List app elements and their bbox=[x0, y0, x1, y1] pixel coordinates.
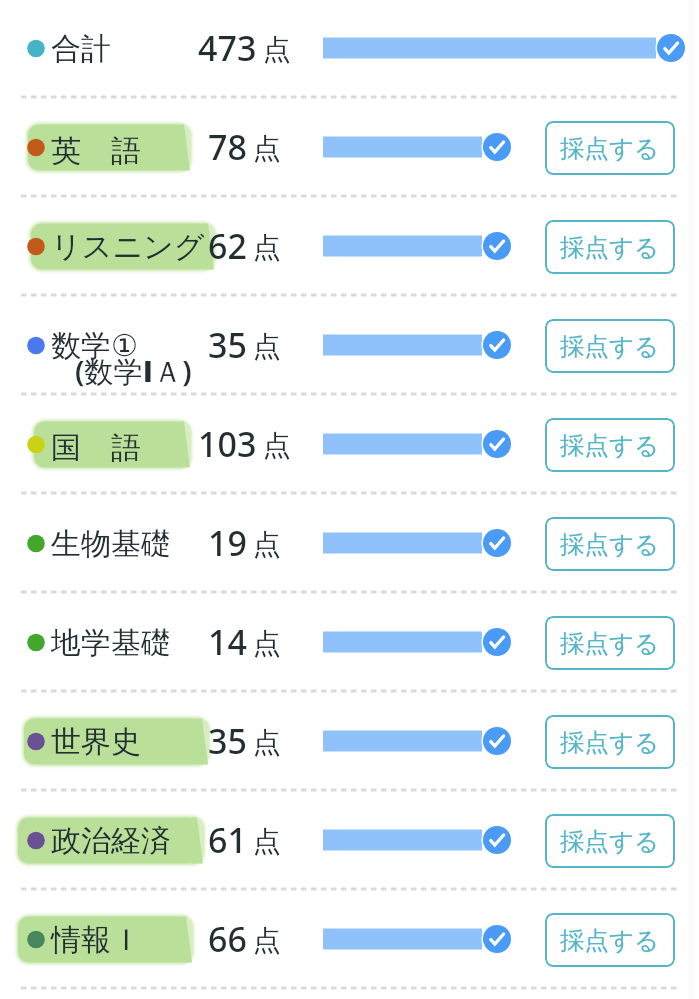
staticText: 61 bbox=[208, 817, 247, 863]
staticText: 62 bbox=[208, 223, 247, 269]
staticText: 35 bbox=[208, 718, 247, 764]
button[interactable]: 合計 bbox=[0, 0, 699, 99]
button[interactable]: 地学基礎 bbox=[0, 594, 699, 693]
staticText: 19 bbox=[208, 520, 247, 566]
staticText: 点 bbox=[253, 824, 281, 859]
button[interactable]: 採点する bbox=[545, 715, 675, 769]
button[interactable]: 採点する bbox=[545, 319, 675, 373]
staticText: 103 bbox=[198, 421, 257, 467]
staticText: 点 bbox=[253, 923, 281, 958]
staticText: 点 bbox=[263, 32, 291, 67]
button[interactable]: 採点する bbox=[545, 418, 675, 472]
staticText: 点 bbox=[253, 230, 281, 265]
button[interactable]: 採点する bbox=[545, 220, 675, 274]
staticText: 点 bbox=[253, 527, 281, 562]
button[interactable]: 情報Ｉ bbox=[0, 891, 699, 990]
staticText: 点 bbox=[263, 428, 291, 463]
button[interactable]: 採点する bbox=[545, 121, 675, 175]
button[interactable]: 政治経済 bbox=[0, 792, 699, 891]
button[interactable]: 国 語 bbox=[0, 396, 699, 495]
staticText: 生物基礎 bbox=[51, 525, 171, 563]
staticText: 政治経済 bbox=[51, 822, 171, 860]
button[interactable]: 英 語 bbox=[0, 99, 699, 198]
button[interactable]: 生物基礎 bbox=[0, 495, 699, 594]
staticText: 国 語 bbox=[51, 426, 141, 467]
button[interactable]: 世界史 bbox=[0, 693, 699, 792]
staticText: 78 bbox=[208, 124, 247, 170]
button[interactable]: 採点する bbox=[545, 814, 675, 868]
button[interactable]: 採点する bbox=[545, 616, 675, 670]
staticText: 473 bbox=[198, 25, 257, 71]
staticText: 14 bbox=[208, 619, 247, 665]
button[interactable]: リスニング bbox=[0, 198, 699, 297]
staticText: 数学① bbox=[51, 327, 138, 365]
staticText: 採点する bbox=[560, 232, 660, 263]
staticText: 採点する bbox=[560, 826, 660, 857]
staticText: 採点する bbox=[560, 628, 660, 659]
staticText: 点 bbox=[253, 329, 281, 364]
staticText: 点 bbox=[253, 626, 281, 661]
staticText: (数学ⅠＡ) bbox=[75, 351, 192, 391]
staticText: 点 bbox=[253, 725, 281, 760]
staticText: 採点する bbox=[560, 925, 660, 956]
button[interactable]: 数学① bbox=[0, 297, 699, 396]
button[interactable]: 採点する bbox=[545, 913, 675, 967]
button[interactable]: 採点する bbox=[545, 517, 675, 571]
staticText: 採点する bbox=[560, 430, 660, 461]
staticText: リスニング bbox=[51, 228, 205, 266]
staticText: 地学基礎 bbox=[51, 624, 171, 662]
staticText: 35 bbox=[208, 322, 247, 368]
staticText: 合計 bbox=[51, 30, 111, 68]
staticText: 情報Ｉ bbox=[51, 921, 141, 959]
staticText: 採点する bbox=[560, 727, 660, 758]
staticText: 世界史 bbox=[51, 723, 141, 761]
staticText: 英 語 bbox=[51, 129, 141, 170]
staticText: 採点する bbox=[560, 331, 660, 362]
staticText: 点 bbox=[253, 131, 281, 166]
staticText: 採点する bbox=[560, 529, 660, 560]
staticText: 採点する bbox=[560, 133, 660, 164]
staticText: 66 bbox=[208, 916, 247, 962]
